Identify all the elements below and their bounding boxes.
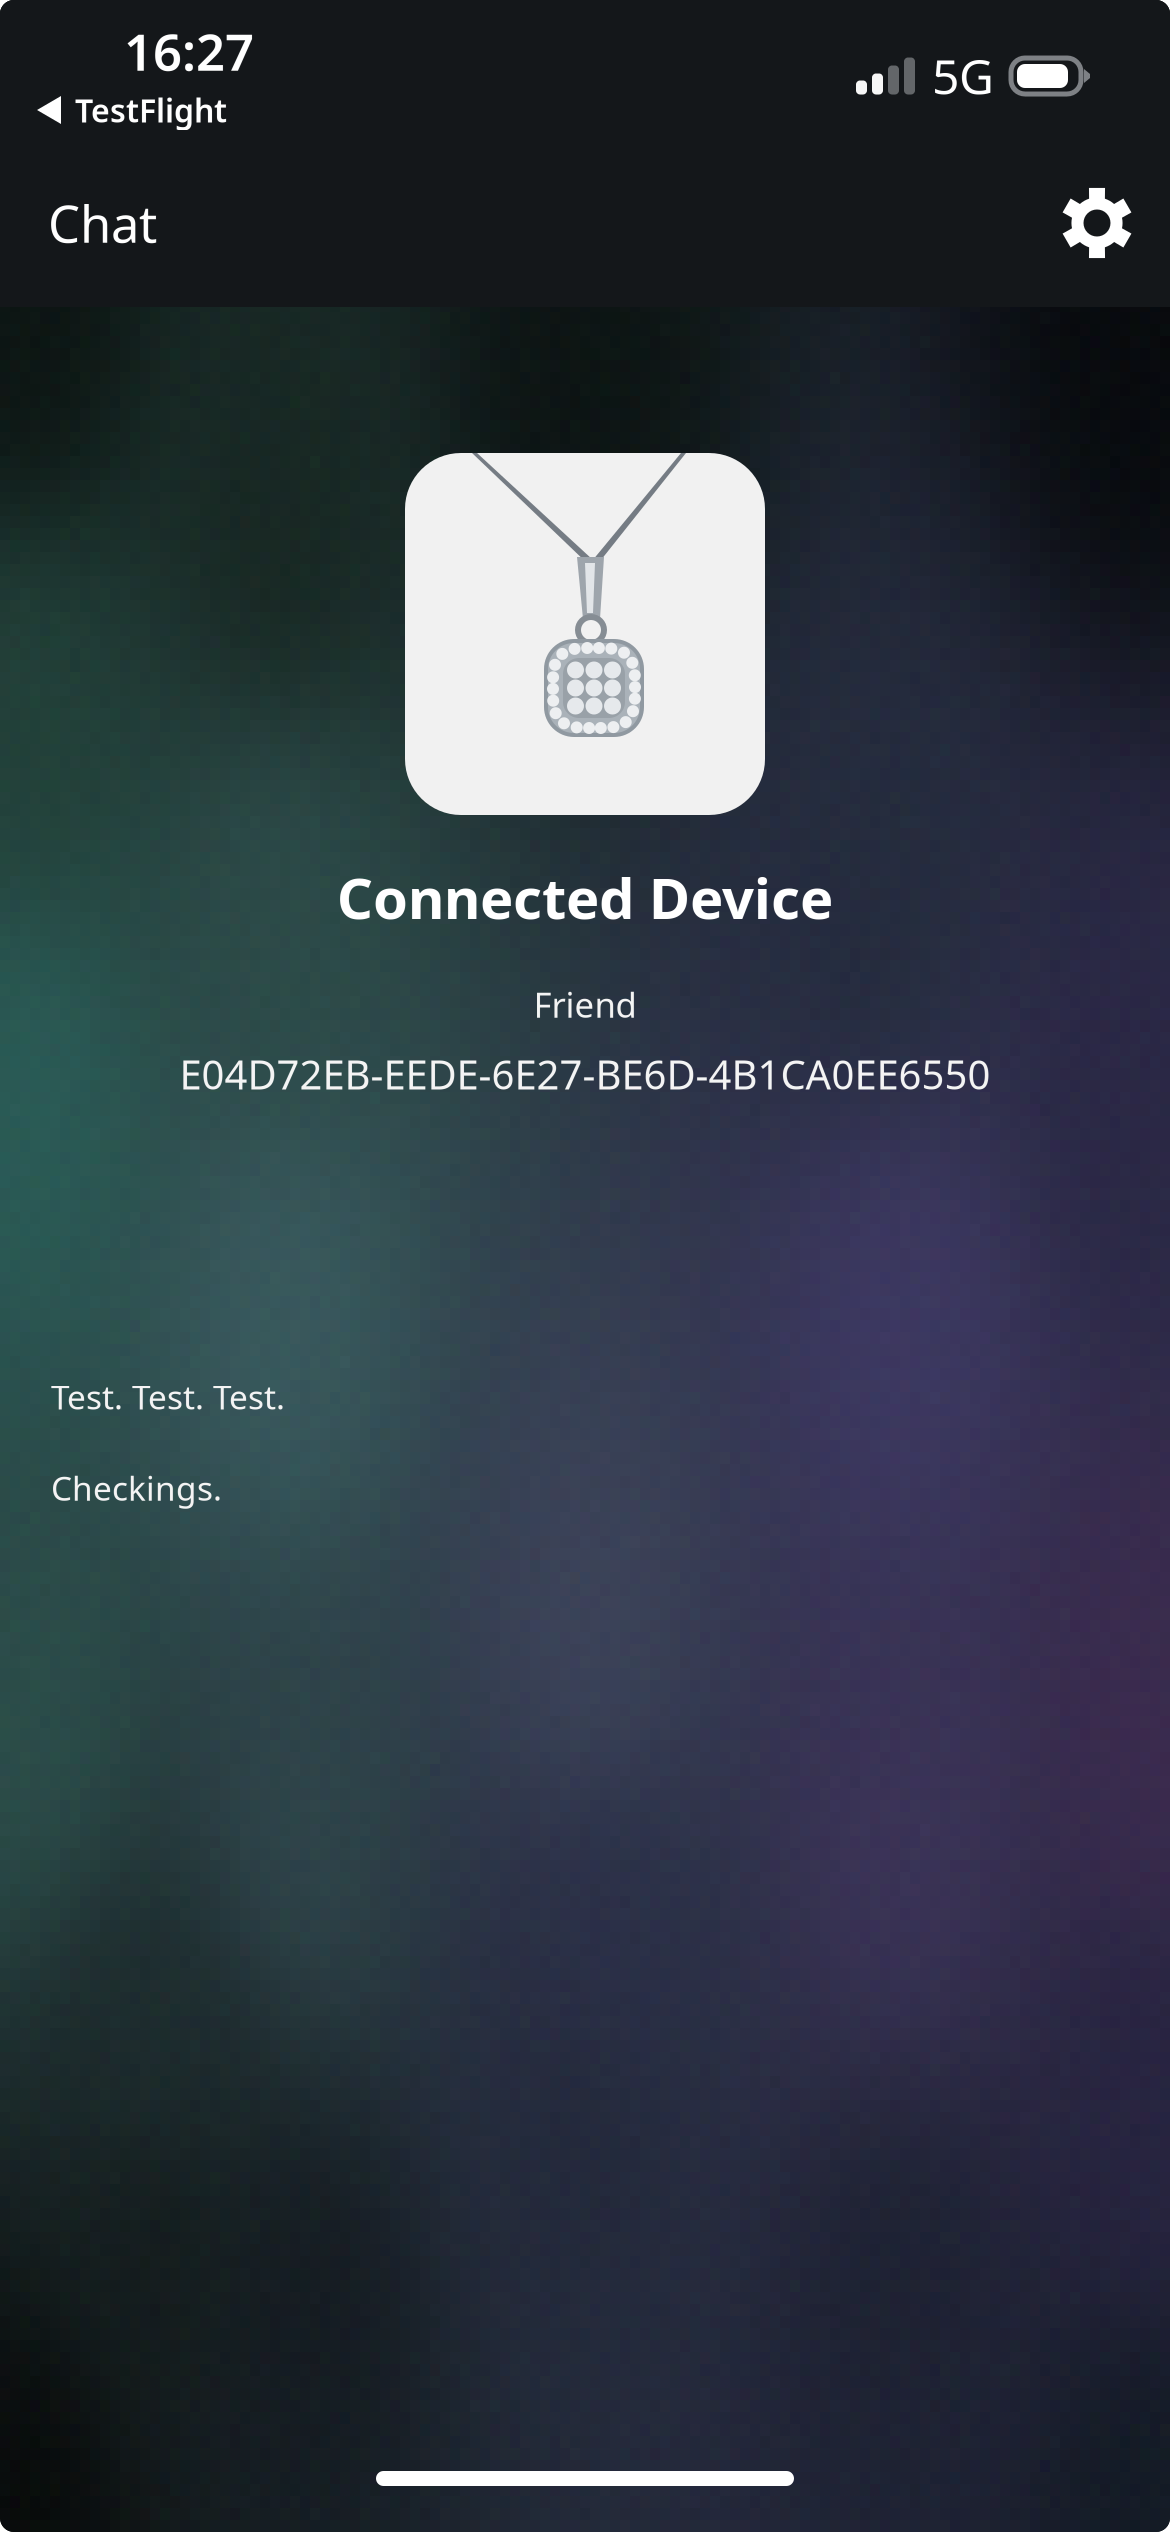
staticText: Connected Device — [337, 860, 833, 934]
button[interactable]: Settings — [1026, 175, 1122, 271]
staticText: 16:27 — [124, 17, 254, 85]
staticText: Chat — [48, 189, 157, 257]
staticText: Test. Test. Test. — [51, 1374, 285, 1419]
staticText: Checkings. — [51, 1466, 222, 1510]
staticText: 5G — [932, 44, 994, 108]
button[interactable]: TestFlight — [37, 93, 227, 127]
staticText: TestFlight — [75, 89, 227, 131]
staticText: Friend — [533, 981, 636, 1027]
staticText: E04D72EB-EEDE-6E27-BE6D-4B1CA0EE6550 — [179, 1047, 990, 1100]
